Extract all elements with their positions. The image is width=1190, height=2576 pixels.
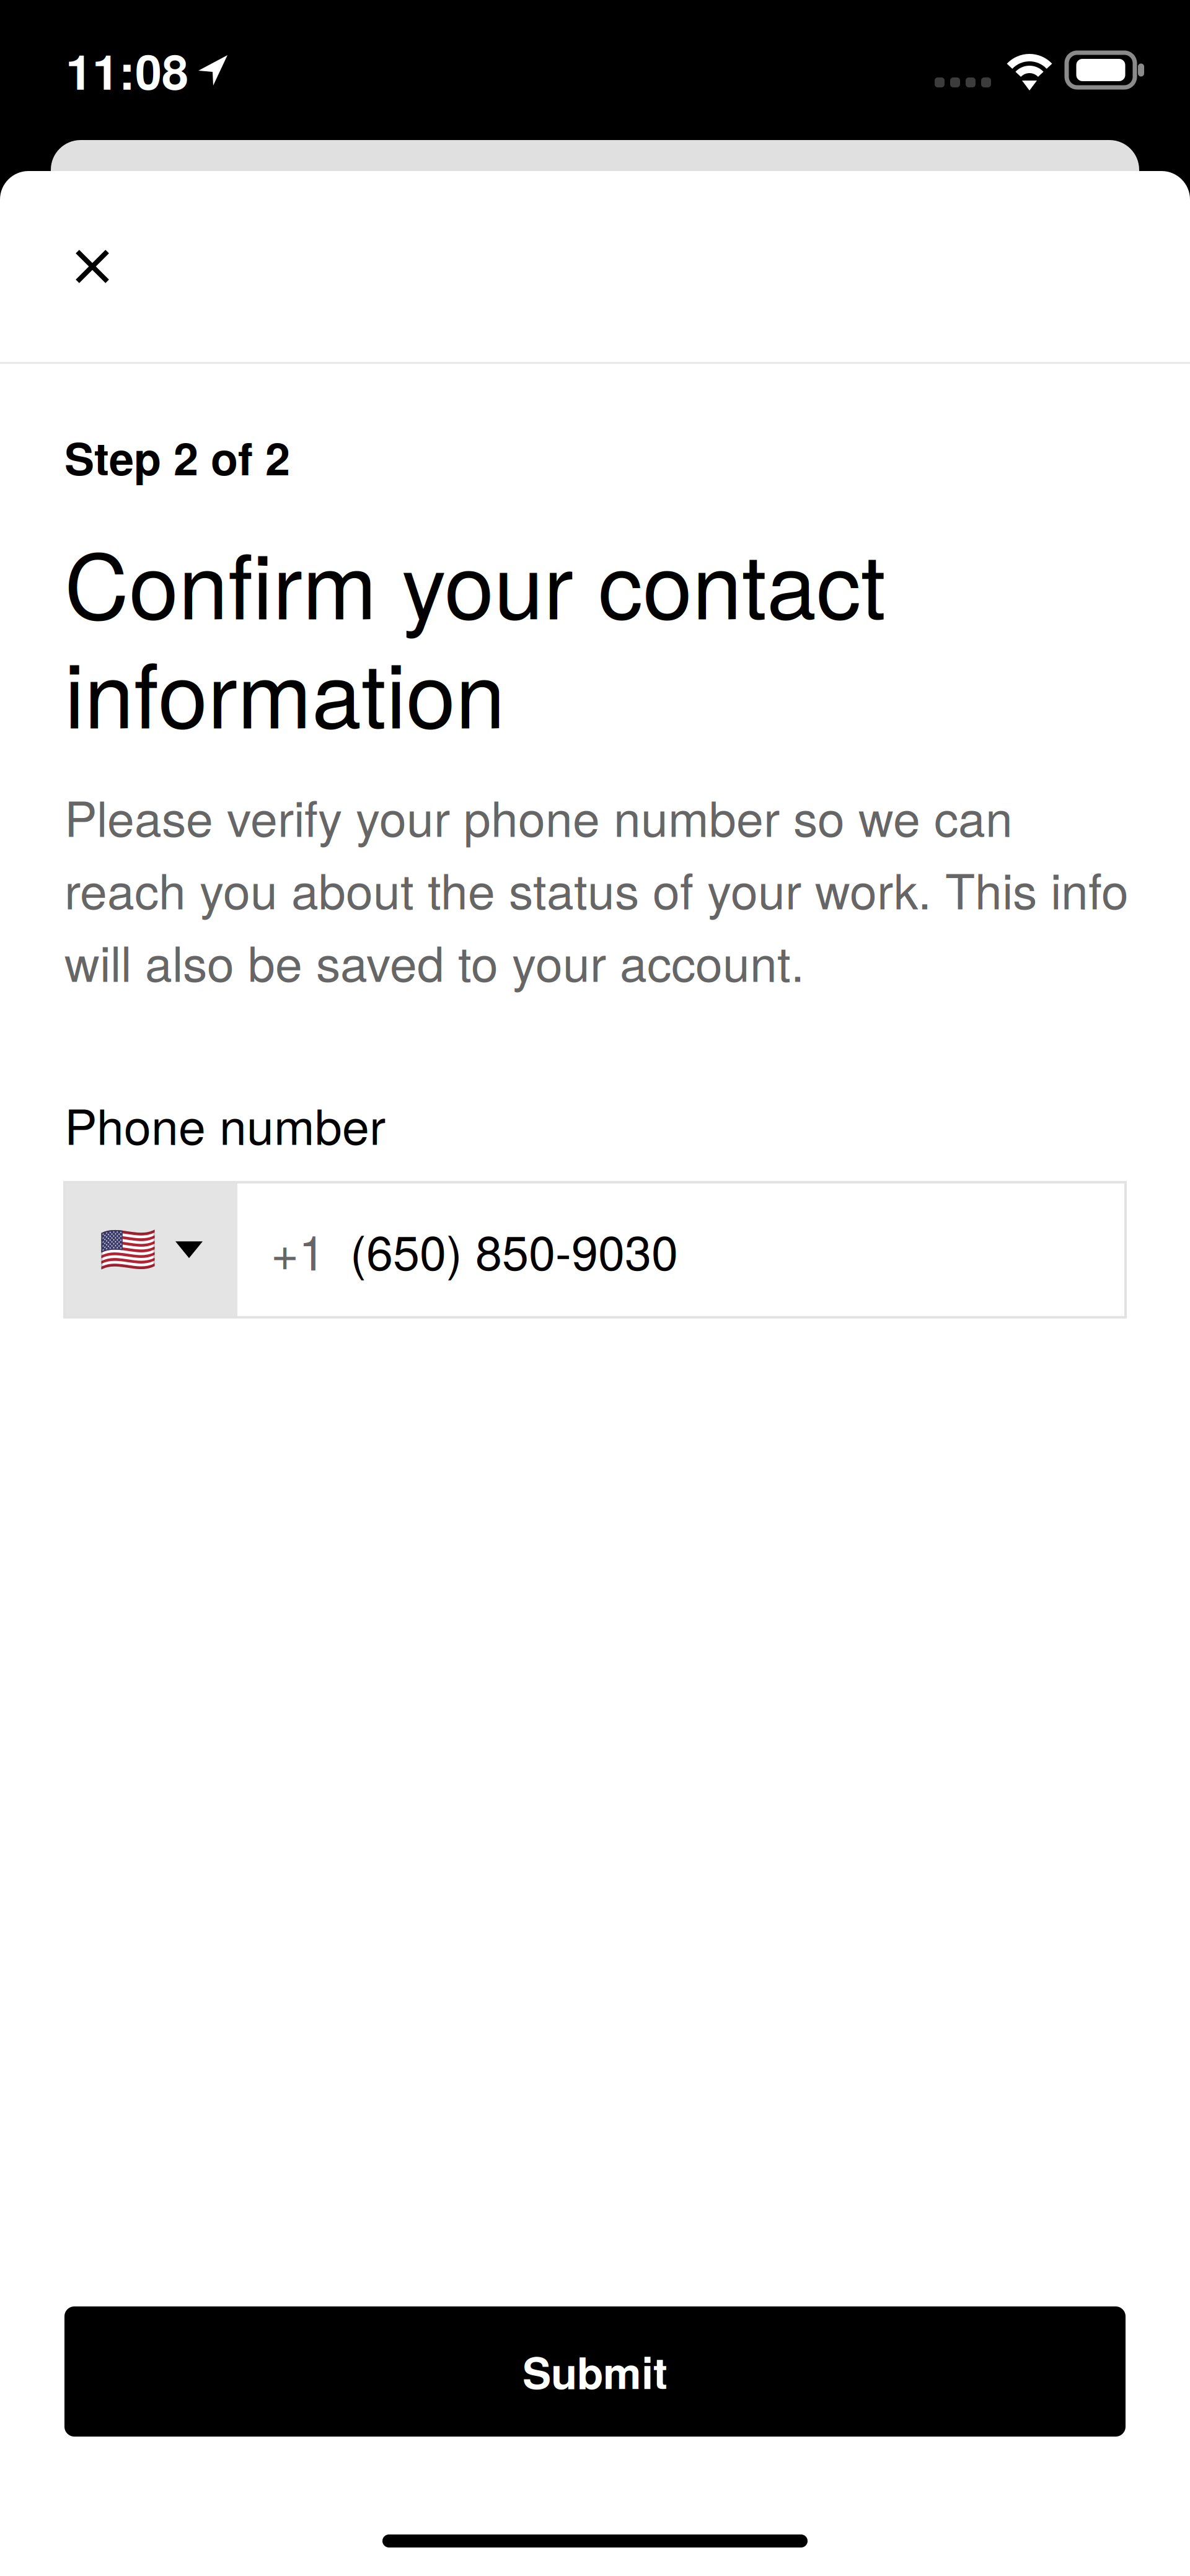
button[interactable]: Close xyxy=(53,227,131,306)
staticText: reach you about the status of your work.… xyxy=(64,853,1129,923)
staticText: Step 2 of 2 xyxy=(64,425,290,489)
staticText: 11:08 xyxy=(66,36,188,104)
button[interactable]: Submit xyxy=(64,2306,1126,2437)
staticText: (650) 850-9030 xyxy=(350,1215,678,1284)
staticText: Submit xyxy=(522,2341,668,2402)
button[interactable]: Select country code xyxy=(64,1182,237,1317)
staticText: Confirm your contact xyxy=(64,517,886,645)
staticText: 🇺🇸 xyxy=(99,1223,157,1277)
staticText: Please verify your phone number so we ca… xyxy=(64,781,1013,851)
staticText: Phone number xyxy=(64,1089,386,1159)
staticText: information xyxy=(64,626,505,754)
staticText: +1 xyxy=(271,1215,325,1284)
staticText: will also be saved to your account. xyxy=(64,926,804,996)
